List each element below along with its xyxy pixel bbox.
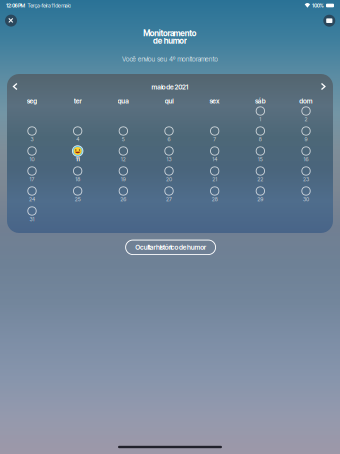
button[interactable]: Mês anterior — [8, 80, 22, 94]
button[interactable]: 13 — [158, 145, 180, 162]
staticText: seg — [27, 97, 37, 105]
staticText: 18 — [75, 176, 80, 183]
button[interactable]: 15 — [249, 145, 271, 162]
button[interactable]: Ocultar histórico de humor — [126, 240, 216, 255]
staticText: 31 — [29, 216, 34, 223]
staticText: 30 — [303, 196, 309, 203]
staticText: 5 — [122, 136, 125, 143]
staticText: ter — [74, 97, 81, 105]
staticText: Ocultar histórico de humor — [135, 243, 206, 251]
staticText: 24 — [29, 196, 35, 203]
staticText: 2 — [304, 116, 307, 123]
staticText: 13 — [166, 156, 171, 163]
staticText: 16 — [303, 156, 308, 163]
staticText: 27 — [166, 196, 172, 203]
staticText: maio de 2021 — [151, 83, 189, 91]
button[interactable]: 14 — [204, 145, 226, 162]
staticText: 3 — [30, 136, 33, 143]
button[interactable]: 5 — [112, 125, 134, 142]
button[interactable]: 1 — [249, 105, 271, 122]
button[interactable]: 11 — [67, 145, 89, 162]
staticText: 12 — [121, 156, 126, 163]
staticText: 23 — [303, 176, 309, 183]
staticText: Terça-feira 11 de maio — [26, 2, 71, 9]
staticText: dom — [299, 97, 313, 105]
button[interactable]: 21 — [204, 165, 226, 182]
button[interactable]: 22 — [249, 165, 271, 182]
staticText: 29 — [257, 196, 263, 203]
staticText: 12:06 PM — [6, 2, 26, 9]
staticText: 100% — [312, 2, 323, 9]
button[interactable]: Próximo mês — [316, 80, 330, 94]
staticText: Você enviou seu 4º monitoramento — [122, 55, 218, 63]
staticText: 21 — [212, 176, 217, 183]
staticText: 28 — [212, 196, 218, 203]
staticText: sáb — [255, 97, 266, 105]
staticText: 17 — [29, 176, 34, 183]
button[interactable]: 8 — [249, 125, 271, 142]
button[interactable]: 4 — [67, 125, 89, 142]
staticText: 6 — [167, 136, 170, 143]
staticText: Monitoramento — [143, 28, 197, 38]
staticText: 4 — [76, 136, 79, 143]
staticText: 9 — [304, 136, 307, 143]
staticText: 25 — [75, 196, 81, 203]
button[interactable]: 30 — [295, 185, 317, 202]
button[interactable]: Abrir diário — [319, 11, 339, 31]
button[interactable]: 20 — [158, 165, 180, 182]
button[interactable]: 16 — [295, 145, 317, 162]
button[interactable]: 10 — [21, 145, 43, 162]
staticText: 14 — [212, 156, 217, 163]
button[interactable]: 17 — [21, 165, 43, 182]
staticText: 20 — [166, 176, 172, 183]
staticText: de humor — [153, 36, 187, 46]
staticText: 11 — [76, 156, 80, 163]
staticText: 8 — [259, 136, 262, 143]
button[interactable]: 12 — [112, 145, 134, 162]
button[interactable]: Fechar — [1, 11, 21, 31]
staticText: 7 — [213, 136, 216, 143]
staticText: 19 — [121, 176, 126, 183]
button[interactable]: 26 — [112, 185, 134, 202]
button[interactable]: 9 — [295, 125, 317, 142]
staticText: qua — [117, 97, 129, 105]
button[interactable]: 25 — [67, 185, 89, 202]
button[interactable]: 29 — [249, 185, 271, 202]
button[interactable]: 28 — [204, 185, 226, 202]
button[interactable]: 18 — [67, 165, 89, 182]
button[interactable]: 27 — [158, 185, 180, 202]
button[interactable]: 19 — [112, 165, 134, 182]
staticText: 15 — [258, 156, 263, 163]
button[interactable]: 2 — [295, 105, 317, 122]
button[interactable]: 23 — [295, 165, 317, 182]
staticText: 10 — [29, 156, 34, 163]
button[interactable]: 31 — [21, 205, 43, 222]
button[interactable]: 7 — [204, 125, 226, 142]
button[interactable]: 3 — [21, 125, 43, 142]
staticText: qui — [165, 97, 173, 105]
staticText: 1 — [259, 116, 261, 123]
button[interactable]: 6 — [158, 125, 180, 142]
staticText: 22 — [257, 176, 263, 183]
staticText: 26 — [120, 196, 126, 203]
button[interactable]: 24 — [21, 185, 43, 202]
staticText: sex — [209, 97, 220, 105]
